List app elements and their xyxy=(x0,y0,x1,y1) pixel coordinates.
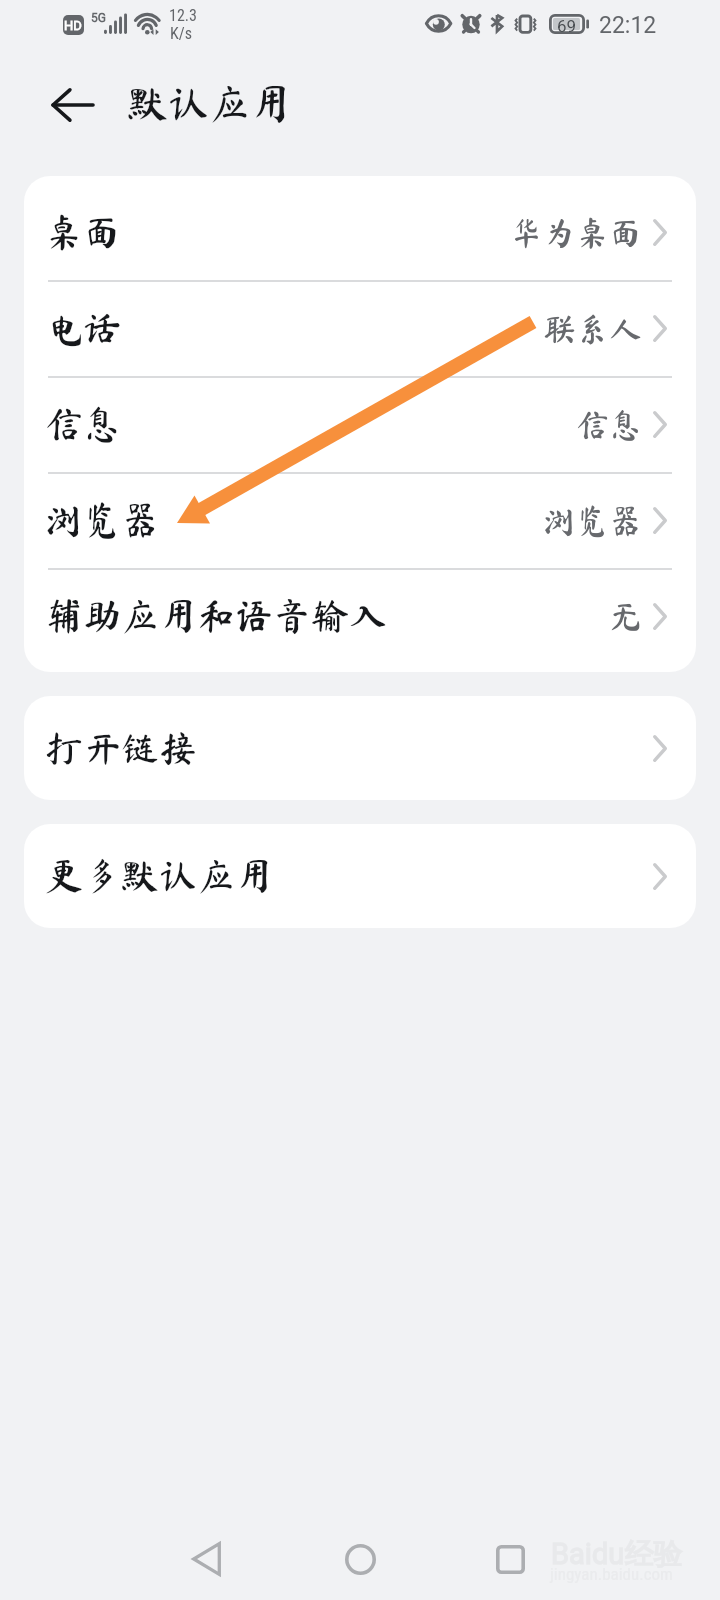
staticText: 联系人 xyxy=(543,312,642,345)
staticText: 桌面 xyxy=(45,213,122,251)
button[interactable]: 桌面 xyxy=(24,184,696,280)
staticText: 打开链接 xyxy=(45,729,198,767)
staticText: 默认应用 xyxy=(127,83,291,124)
staticText: 无 xyxy=(609,600,642,633)
button[interactable]: Back xyxy=(175,1528,237,1590)
button[interactable]: 电话 xyxy=(24,280,696,376)
staticText: 5G xyxy=(91,11,106,25)
staticText: 更多默认应用 xyxy=(45,857,274,895)
staticText: 电话 xyxy=(45,309,122,347)
staticText: 12.3 xyxy=(169,6,197,25)
staticText: 69 xyxy=(557,16,577,36)
staticText: Baidu经验 xyxy=(551,1536,683,1573)
staticText: K/s xyxy=(170,24,192,43)
staticText: 浏览器 xyxy=(45,501,160,539)
staticText: 华为桌面 xyxy=(510,216,642,249)
staticText: 信息 xyxy=(45,405,122,443)
staticText: 辅助应用和语音输入 xyxy=(45,597,388,635)
staticText: 22:12 xyxy=(599,12,657,39)
button[interactable]: 辅助应用和语音输入 xyxy=(24,568,696,664)
button[interactable]: 打开链接 xyxy=(24,700,696,796)
button[interactable]: 浏览器 xyxy=(24,472,696,568)
button[interactable]: Home xyxy=(329,1528,391,1590)
staticText: 信息 xyxy=(576,408,642,441)
staticText: 浏览器 xyxy=(543,504,642,537)
button[interactable]: Recents xyxy=(479,1528,541,1590)
button[interactable]: 更多默认应用 xyxy=(24,828,696,924)
staticText: HD xyxy=(64,18,82,33)
button[interactable]: 信息 xyxy=(24,376,696,472)
button[interactable]: Back xyxy=(44,77,100,133)
